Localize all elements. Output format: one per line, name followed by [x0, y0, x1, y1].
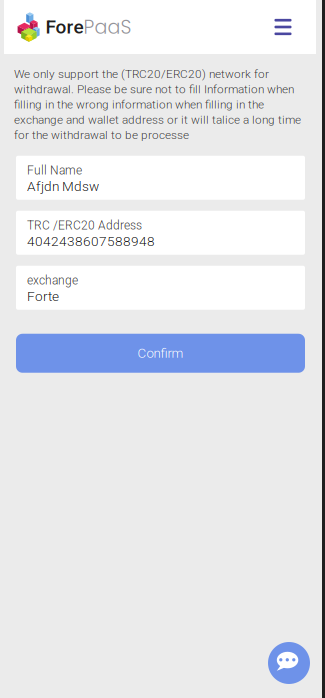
staticText: Afjdn Mdsw — [27, 178, 99, 194]
button[interactable]: Confirm — [16, 334, 305, 373]
staticText: Full Name — [27, 163, 82, 177]
staticText: We only support the (TRC20/ERC20) networ… — [14, 67, 301, 142]
button[interactable]: Menu — [268, 11, 298, 43]
staticText: exchange — [27, 273, 78, 287]
staticText: TRC /ERC20 Address — [27, 218, 142, 232]
staticText: Forte — [27, 288, 59, 304]
staticText: Confirm — [137, 345, 183, 361]
staticText: 4042438607588948 — [27, 233, 155, 249]
button[interactable]: Chat support — [268, 642, 310, 684]
staticText: PaaS — [83, 14, 131, 40]
staticText: Fore — [45, 16, 83, 38]
